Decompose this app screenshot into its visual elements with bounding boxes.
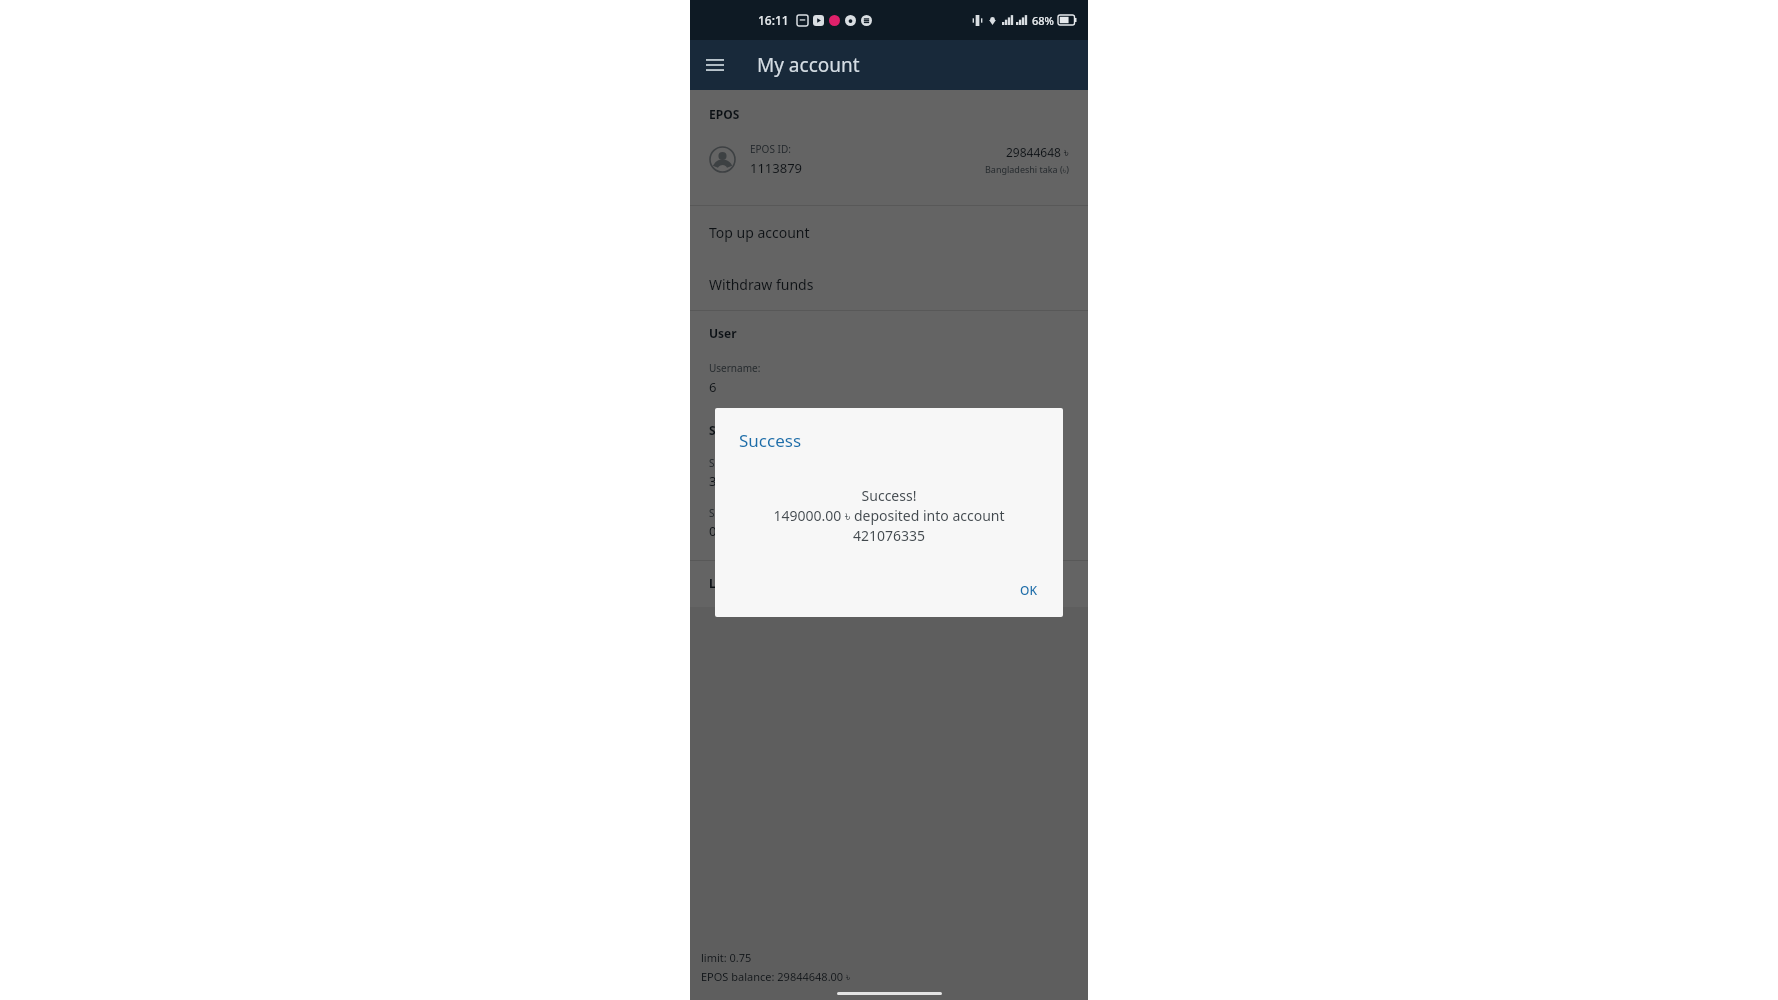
staticText: EPOS: [709, 106, 740, 122]
staticText: 29844648 ৳: [1006, 144, 1069, 160]
staticText: 0: [709, 522, 717, 540]
staticText: Success! 149000.00 ৳ deposited into acco…: [739, 486, 1039, 545]
staticText: 68%: [1032, 13, 1054, 28]
button[interactable]: Open navigation menu: [690, 40, 740, 90]
staticText: EPOS ID:: [750, 142, 791, 156]
staticText: Log: [709, 575, 731, 591]
staticText: limit: 0.75: [701, 950, 752, 965]
button[interactable]: Withdraw funds: [690, 258, 1088, 310]
staticText: EPOS balance: 29844648.00 ৳: [701, 969, 851, 984]
staticText: My account: [757, 52, 860, 78]
button[interactable]: OK: [1006, 573, 1051, 607]
staticText: Server:: [709, 456, 742, 470]
staticText: 3: [709, 472, 717, 490]
staticText: 16:11: [758, 12, 789, 28]
staticText: Withdraw funds: [709, 275, 814, 294]
staticText: OK: [1020, 582, 1037, 598]
staticText: Scale:: [709, 506, 736, 520]
staticText: Top up account: [709, 223, 810, 242]
staticText: User: [709, 325, 737, 341]
staticText: Settings: [709, 422, 759, 438]
staticText: 1113879: [750, 159, 803, 177]
button[interactable]: EPOS ID:: [690, 136, 1088, 183]
staticText: 6: [709, 378, 717, 396]
staticText: Bangladeshi taka (৳): [985, 163, 1069, 175]
button[interactable]: Top up account: [690, 206, 1088, 258]
staticText: Username:: [709, 361, 761, 375]
staticText: Success: [739, 429, 802, 452]
